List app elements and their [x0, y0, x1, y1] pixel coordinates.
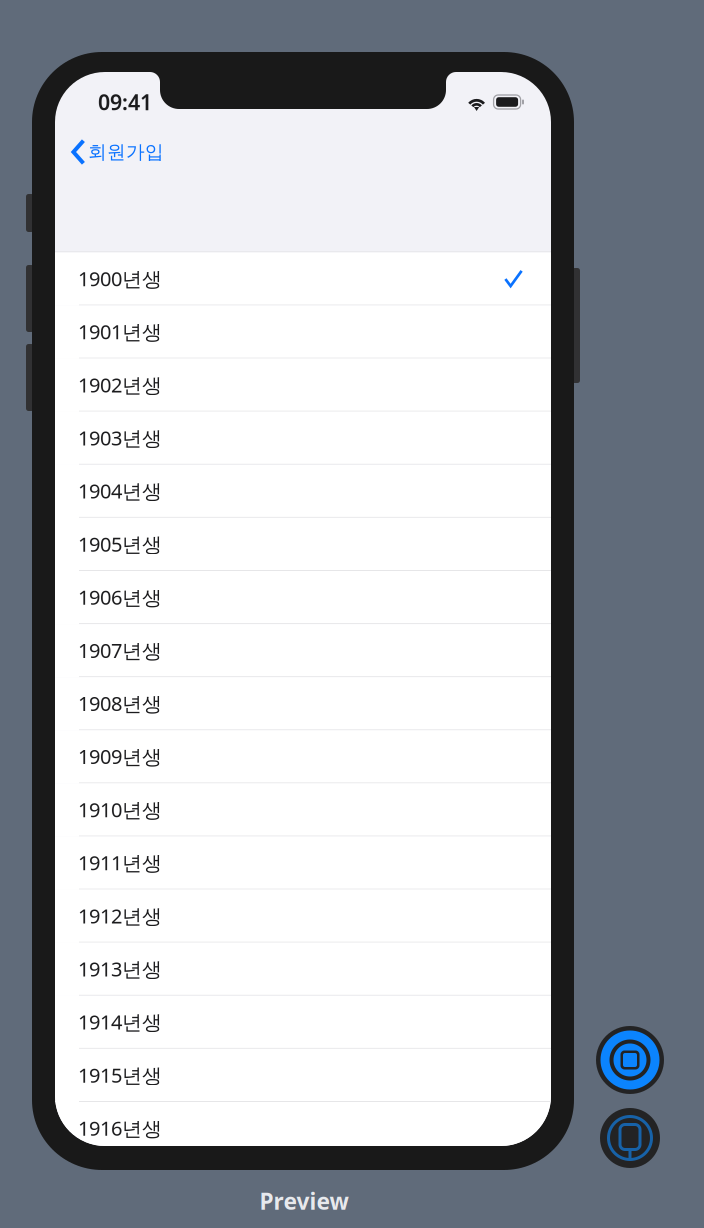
staticText: 1909년생	[78, 743, 162, 770]
button[interactable]: 1910년생	[55, 783, 551, 836]
staticText: 1904년생	[78, 478, 162, 504]
button[interactable]: Preview on Device	[600, 1108, 660, 1168]
button[interactable]: 1914년생	[55, 996, 551, 1049]
staticText: 1906년생	[78, 584, 162, 610]
button[interactable]: 1902년생	[55, 359, 551, 412]
button[interactable]: 1907년생	[55, 624, 551, 677]
button[interactable]: 1900년생	[55, 252, 551, 305]
button[interactable]: 1903년생	[55, 412, 551, 465]
staticText: 1911년생	[78, 849, 162, 876]
staticText: 1908년생	[78, 690, 162, 717]
staticText: 회원가입	[88, 140, 164, 163]
button[interactable]: 1906년생	[55, 571, 551, 624]
staticText: 1907년생	[78, 637, 162, 663]
staticText: 1912년생	[78, 902, 162, 929]
staticText: 1905년생	[78, 531, 162, 557]
staticText: 1903년생	[78, 424, 162, 451]
button[interactable]: 1915년생	[55, 1049, 551, 1102]
staticText: 09:41	[98, 88, 152, 116]
staticText: 1916년생	[78, 1115, 162, 1141]
button[interactable]: 1913년생	[55, 943, 551, 996]
button[interactable]: 1901년생	[55, 305, 551, 359]
button[interactable]: 1909년생	[55, 730, 551, 783]
button[interactable]: 1905년생	[55, 518, 551, 571]
staticText: 1910년생	[78, 796, 162, 823]
button[interactable]: 회원가입	[55, 130, 176, 174]
staticText: 1915년생	[78, 1062, 162, 1088]
button[interactable]: 1904년생	[55, 465, 551, 518]
staticText: Preview	[259, 1186, 348, 1216]
staticText: 1902년생	[78, 371, 162, 398]
button[interactable]: Live Preview	[596, 1026, 664, 1094]
button[interactable]: 1908년생	[55, 677, 551, 730]
staticText: 1901년생	[78, 318, 162, 345]
staticText: 1914년생	[78, 1009, 162, 1035]
button[interactable]: 1916년생	[55, 1102, 551, 1155]
staticText: 1913년생	[78, 955, 162, 982]
button[interactable]: 1911년생	[55, 836, 551, 890]
staticText: 1900년생	[78, 265, 162, 292]
button[interactable]: 1912년생	[55, 890, 551, 943]
